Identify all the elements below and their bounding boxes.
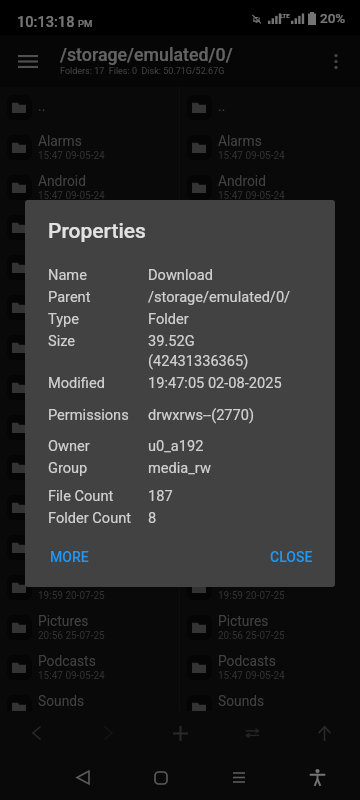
staticText: Download [148, 266, 213, 283]
staticText: Sounds [218, 693, 265, 709]
staticText: Pictures [218, 613, 269, 629]
staticText: 15:47 09-05-24 [38, 230, 105, 242]
button[interactable]: MORE [38, 541, 101, 573]
button[interactable]: Pictures [180, 607, 360, 647]
staticText: Modified [48, 374, 105, 391]
staticText: Group [48, 459, 88, 476]
button[interactable]: Recent apps [200, 755, 278, 800]
staticText: Ringtones [38, 493, 100, 509]
staticText: Music [38, 413, 76, 429]
staticText: Properties [48, 219, 146, 244]
staticText: Alarms [38, 133, 82, 149]
staticText: 15:47 09-05-24 [38, 150, 105, 162]
button[interactable]: Audiobooks [180, 207, 360, 247]
button[interactable]: Ringtones [0, 487, 179, 527]
button[interactable]: Audiobooks [0, 207, 179, 247]
button[interactable]: DCIM [0, 247, 179, 287]
staticText: 20% [320, 10, 346, 26]
staticText: 18:21 11-05-24 [38, 270, 105, 282]
staticText: File Count [48, 487, 114, 504]
button[interactable]: Podcasts [180, 647, 360, 687]
button[interactable]: Android [180, 167, 360, 207]
button[interactable]: Music [180, 407, 360, 447]
staticText: 15:47 09-05-24 [218, 670, 285, 682]
button[interactable]: Home [122, 755, 200, 800]
staticText: 19:47 02-08-25 [218, 350, 285, 362]
button[interactable]: Download [180, 327, 360, 367]
button[interactable]: Telegram [0, 527, 179, 567]
staticText: 15:47 09-05-24 [38, 470, 105, 482]
staticText: Movies [218, 373, 263, 389]
staticText: 15:47 09-05-24 [38, 190, 105, 202]
staticText: Music [218, 413, 256, 429]
staticText: Documents [218, 293, 289, 309]
button[interactable]: Up one level [288, 711, 360, 755]
staticText: 15:47 09-05-24 [38, 430, 105, 442]
button[interactable]: Notifications [0, 567, 179, 607]
button[interactable]: Sounds [180, 687, 360, 711]
button[interactable]: CLOSE [258, 541, 325, 573]
button[interactable]: Podcasts [0, 647, 179, 687]
staticText: /storage/emulated/0/ [148, 288, 291, 305]
button[interactable]: Music [0, 407, 179, 447]
staticText: Audiobooks [38, 213, 112, 229]
staticText: PM [78, 18, 93, 29]
staticText: Android [38, 173, 86, 189]
button[interactable]: Documents [0, 287, 179, 327]
staticText: MORE [50, 549, 89, 565]
staticText: 39.52G [148, 332, 195, 349]
button[interactable]: DCIM [180, 247, 360, 287]
button[interactable]: Documents [180, 287, 360, 327]
button[interactable]: .. [0, 87, 179, 127]
staticText: 187 [148, 487, 173, 504]
button[interactable]: Recordings [180, 447, 360, 487]
button[interactable]: Accessibility [278, 755, 356, 800]
button[interactable]: Android [0, 167, 179, 207]
staticText: media_rw [148, 459, 211, 476]
staticText: u0_a192 [148, 437, 204, 454]
button[interactable]: Recordings [0, 447, 179, 487]
staticText: Notifications [218, 573, 297, 589]
staticText: Owner [48, 437, 90, 454]
staticText: 20:24 13-04-25 [38, 550, 105, 562]
button[interactable]: Movies [180, 367, 360, 407]
button[interactable]: Download [0, 327, 179, 367]
button[interactable]: Transfer [216, 711, 288, 755]
staticText: .. [38, 98, 46, 114]
button[interactable]: Ringtones [180, 487, 360, 527]
staticText: Podcasts [218, 653, 276, 669]
button[interactable]: Back [44, 755, 122, 800]
button[interactable]: Add [144, 711, 216, 755]
staticText: 19:59 20-07-25 [38, 590, 105, 602]
button[interactable]: Alarms [180, 127, 360, 167]
button[interactable]: Sounds [0, 687, 179, 711]
button[interactable]: .. [180, 87, 360, 127]
staticText: Download [38, 333, 100, 349]
staticText: Recordings [38, 453, 108, 469]
button[interactable]: Movies [0, 367, 179, 407]
button[interactable]: Alarms [0, 127, 179, 167]
staticText: Folder Count [48, 509, 132, 526]
button[interactable]: More options [312, 37, 360, 85]
button[interactable]: Notifications [180, 567, 360, 607]
staticText: drwxrws--(2770) [148, 406, 255, 423]
button[interactable]: Pictures [0, 607, 179, 647]
button[interactable]: Telegram [180, 527, 360, 567]
button[interactable]: Open navigation drawer [4, 37, 52, 85]
staticText: Podcasts [38, 653, 96, 669]
staticText: 09:12 02-06-24 [38, 310, 105, 322]
staticText: 10:13:18 [17, 13, 75, 30]
staticText: Android [218, 173, 266, 189]
